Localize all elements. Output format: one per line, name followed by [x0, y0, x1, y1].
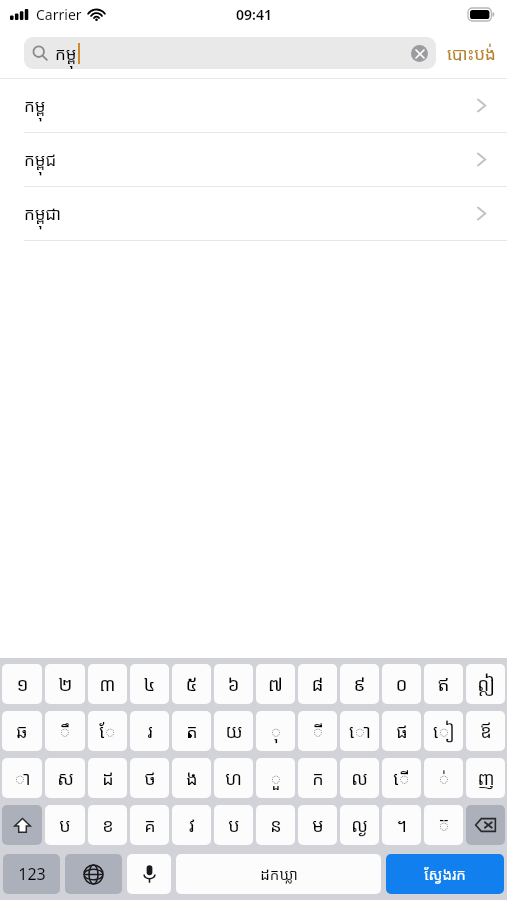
staticText: ុ [270, 719, 282, 744]
staticText: ញ [477, 766, 495, 791]
button[interactable]: ១ [2, 664, 42, 704]
staticText: ដ [102, 766, 114, 791]
staticText: ៤ [143, 671, 156, 697]
staticText: ឹ [59, 719, 71, 744]
button[interactable]: ៧ [256, 664, 295, 704]
staticText: កម្ពុជា [24, 202, 62, 225]
staticText: ើ [393, 766, 410, 791]
button[interactable]: ស [45, 758, 85, 798]
button[interactable]: ៀ [424, 711, 463, 751]
staticText: ន [270, 813, 282, 838]
button[interactable]: ា [2, 758, 42, 798]
button[interactable]: កម្ពុជ [0, 133, 507, 187]
button[interactable]: ៩ [340, 664, 379, 704]
button[interactable]: កម្ពុជា [0, 187, 507, 241]
staticText: ស [57, 766, 74, 791]
button[interactable]: ុ [256, 711, 295, 751]
staticText: ល្ង [351, 813, 368, 838]
staticText: ដកឃ្លា [260, 864, 298, 884]
button[interactable]: ៥ [172, 664, 211, 704]
button[interactable]: ៤ [130, 664, 169, 704]
staticText: ហ [225, 766, 242, 791]
button[interactable]: ប [45, 805, 85, 845]
button[interactable]: ក [298, 758, 337, 798]
button[interactable]: ល្ង [340, 805, 379, 845]
button[interactable]: ខ [88, 805, 127, 845]
staticText: ប [228, 813, 240, 838]
button[interactable]: ៊ [424, 805, 463, 845]
button[interactable]: ៨ [298, 664, 337, 704]
button[interactable]: Shift [2, 805, 42, 845]
button[interactable]: ៦ [214, 664, 253, 704]
button[interactable]: កម្ពុ [0, 79, 507, 133]
button[interactable]: ដ [88, 758, 127, 798]
staticText: ី [312, 719, 324, 744]
staticText: បោះបង់ [447, 42, 496, 65]
staticText: ៀ [433, 719, 455, 744]
button[interactable]: បោះបង់ [436, 34, 507, 73]
staticText: ឥ [437, 671, 450, 697]
staticText: ស្វែងរក [424, 864, 466, 884]
button[interactable]: ហ [214, 758, 253, 798]
staticText: ២ [58, 671, 73, 697]
button[interactable]: ដកឃ្លា [176, 854, 381, 894]
button[interactable]: ង [172, 758, 211, 798]
button[interactable]: ល [340, 758, 379, 798]
button[interactable]: ឪ [466, 711, 505, 751]
button[interactable]: ថ [130, 758, 169, 798]
button[interactable]: ែ [88, 711, 127, 751]
staticText: គ [144, 813, 156, 838]
button[interactable]: ផ [382, 711, 421, 751]
staticText: ៦ [227, 671, 240, 697]
staticText: ង [186, 766, 198, 791]
button[interactable]: ឦ [466, 664, 505, 704]
button[interactable]: 123 [3, 854, 60, 894]
button[interactable]: ់ [424, 758, 463, 798]
button[interactable]: ឹ [45, 711, 85, 751]
staticText: ផ [396, 719, 408, 744]
staticText: ៧ [268, 671, 283, 697]
button[interactable]: ២ [45, 664, 85, 704]
button[interactable]: Backspace [466, 805, 505, 845]
button[interactable]: ត [172, 711, 211, 751]
button[interactable]: ញ [466, 758, 505, 798]
button[interactable]: កម្ពុ [24, 37, 436, 69]
button[interactable]: ោ [340, 711, 379, 751]
button[interactable]: ៣ [88, 664, 127, 704]
staticText: វ [189, 813, 195, 838]
staticText: ៩ [353, 671, 366, 697]
staticText: ៨ [311, 671, 324, 697]
staticText: ខ [102, 813, 114, 838]
button[interactable]: វ [172, 805, 211, 845]
staticText: ក [312, 766, 324, 791]
button[interactable]: ប [214, 805, 253, 845]
staticText: ឪ [480, 719, 492, 744]
button[interactable]: ។ [382, 805, 421, 845]
button[interactable]: ី [298, 711, 337, 751]
staticText: យ [225, 719, 243, 744]
button[interactable]: ួ [256, 758, 295, 798]
button[interactable]: រ [130, 711, 169, 751]
staticText: ប [59, 813, 71, 838]
staticText: ៊ [438, 813, 450, 838]
button[interactable]: គ [130, 805, 169, 845]
staticText: 123 [18, 863, 46, 885]
button[interactable]: ០ [382, 664, 421, 704]
staticText: ល [351, 766, 368, 791]
button[interactable]: Dictation [127, 854, 171, 894]
button[interactable]: ម [298, 805, 337, 845]
button[interactable]: ើ [382, 758, 421, 798]
button[interactable]: ន [256, 805, 295, 845]
staticText: ត [186, 719, 198, 744]
button[interactable]: ឥ [424, 664, 463, 704]
button[interactable]: Switch keyboard language [65, 854, 122, 894]
staticText: រ [147, 719, 153, 744]
button[interactable]: យ [214, 711, 253, 751]
staticText: ។ [396, 813, 407, 838]
button[interactable]: ស្វែងរក [386, 854, 504, 894]
button[interactable]: ឆ [2, 711, 42, 751]
staticText: ់ [438, 766, 450, 791]
staticText: ថ [144, 766, 156, 791]
button[interactable]: Clear text [411, 45, 428, 62]
staticText: ឆ [16, 719, 28, 744]
